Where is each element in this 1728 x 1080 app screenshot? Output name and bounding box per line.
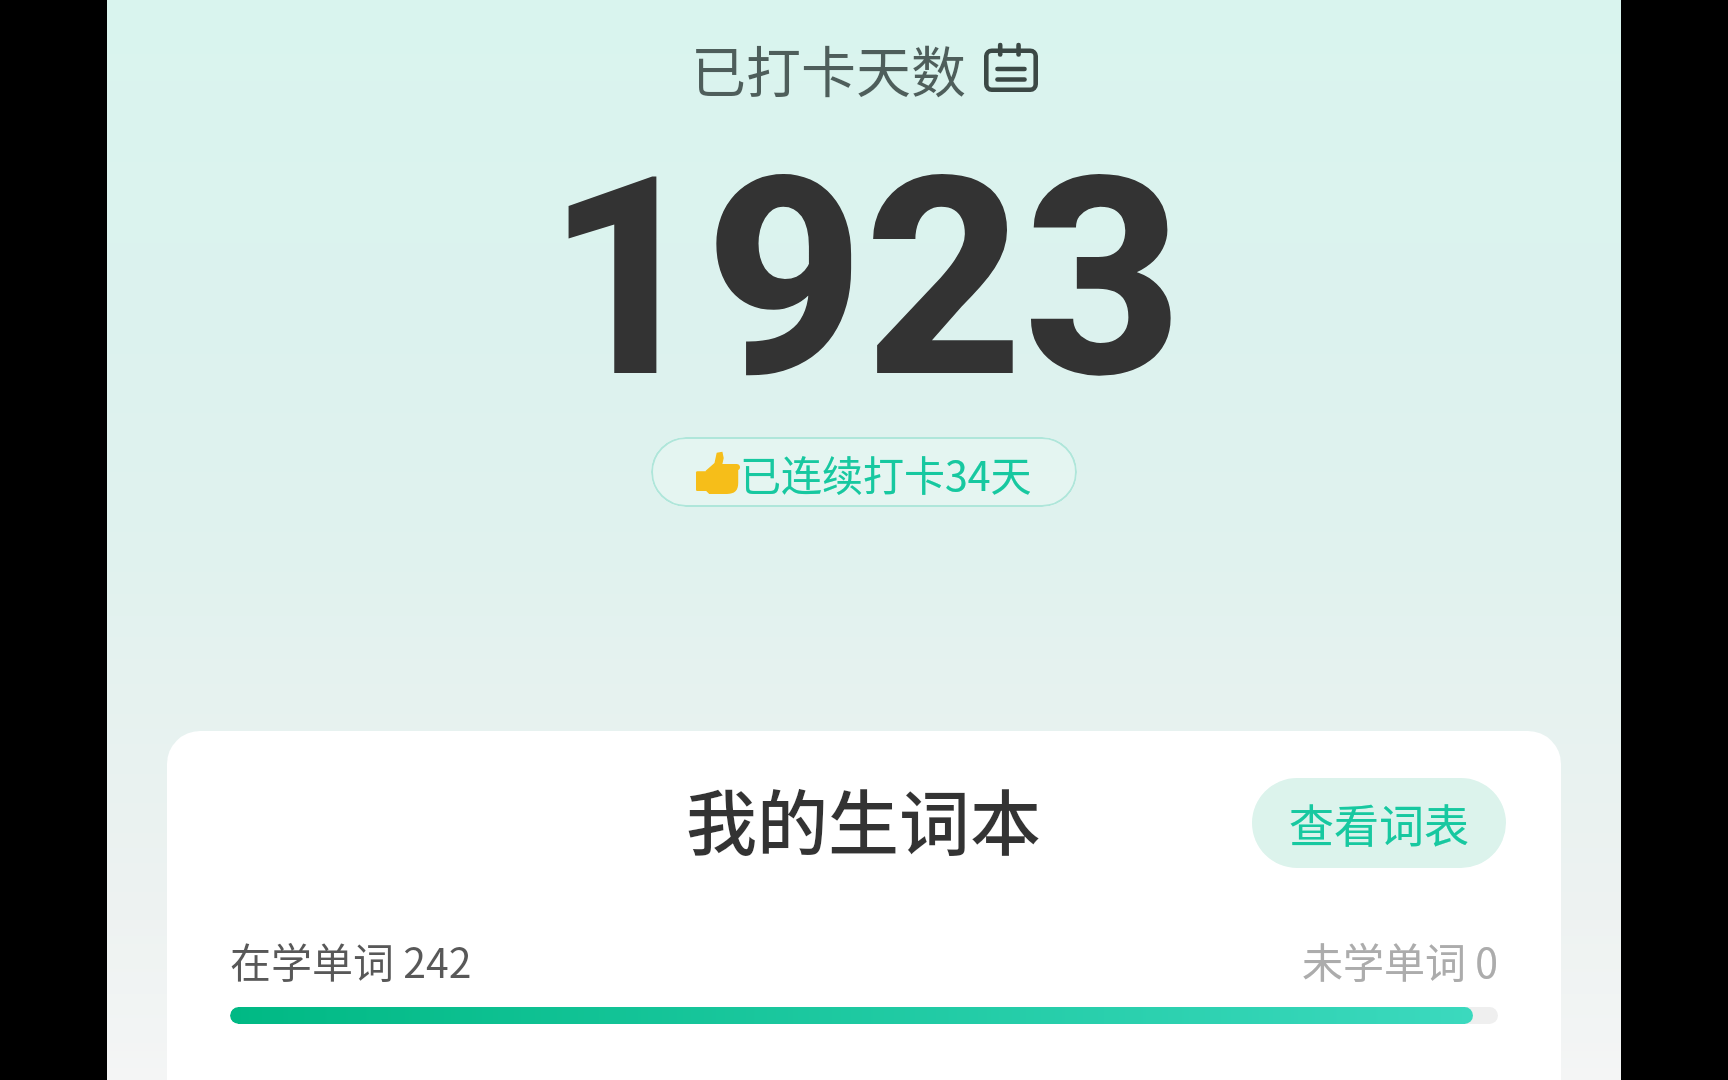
staticText: 未学单词 0: [1302, 930, 1498, 989]
button[interactable]: Thumbs up: [651, 437, 1077, 507]
staticText: 已连续打卡34天: [740, 443, 1032, 502]
button[interactable]: 查看词表: [1252, 778, 1506, 868]
button[interactable]: Check-in calendar: [984, 44, 1038, 92]
staticText: 我的生词本: [686, 767, 1042, 870]
staticText: 已打卡天数: [691, 28, 967, 108]
other: Thumbs up: [696, 451, 740, 494]
staticText: 1923: [546, 117, 1183, 440]
staticText: 查看词表: [1289, 791, 1470, 856]
staticText: 在学单词 242: [230, 930, 472, 989]
